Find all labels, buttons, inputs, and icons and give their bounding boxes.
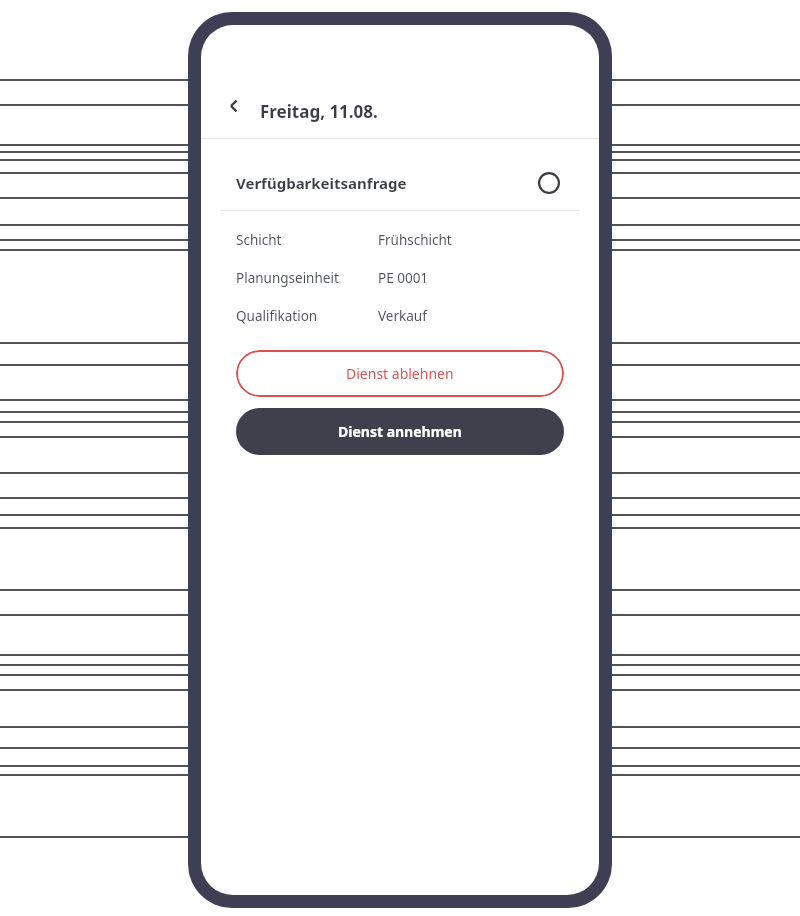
staticText: Verfügbarkeitsanfrage: [236, 173, 407, 193]
button[interactable]: Back: [219, 90, 251, 122]
staticText: PE 0001: [378, 269, 429, 287]
staticText: Qualifikation: [236, 307, 318, 325]
staticText: Planungseinheit: [236, 269, 339, 287]
staticText: Schicht: [236, 231, 282, 249]
staticText: Dienst annehmen: [338, 422, 462, 441]
staticText: Frühschicht: [378, 231, 452, 249]
staticText: Verkauf: [378, 307, 427, 325]
button[interactable]: Dienst annehmen: [236, 408, 564, 455]
staticText: Freitag, 11.08.: [260, 100, 378, 123]
button[interactable]: Dienst ablehnen: [236, 350, 564, 397]
staticText: Dienst ablehnen: [346, 364, 454, 383]
button[interactable]: Status: [534, 168, 564, 198]
